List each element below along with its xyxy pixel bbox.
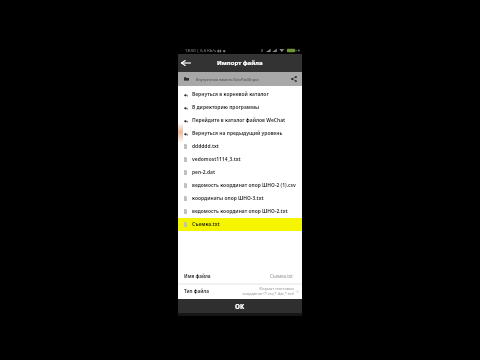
- staticText: vedomost1114_3.txt: [192, 156, 241, 163]
- button[interactable]: В директорию программы: [178, 101, 302, 114]
- button[interactable]: Back: [178, 55, 194, 71]
- button[interactable]: Перейдите в каталог файлов WeChat: [178, 114, 302, 127]
- staticText: Формат текстовых координат (*.csv,*.dat,…: [242, 286, 294, 296]
- staticText: 18:50 | 6.6 Kb/s: [185, 48, 216, 54]
- staticText: Съемка.txt: [270, 273, 293, 279]
- staticText: Имя файла: [184, 273, 211, 279]
- button[interactable]: Вернуться в корневой каталог: [178, 88, 302, 101]
- button[interactable]: Съемка.txt: [178, 218, 302, 231]
- staticText: Вернуться в корневой каталог: [192, 91, 269, 98]
- staticText: Вернуться на предыдущий уровень: [192, 130, 283, 137]
- staticText: Перейдите в каталог файлов WeChat: [192, 117, 286, 124]
- button[interactable]: OK: [178, 299, 302, 313]
- button[interactable]: Тип файла: [184, 285, 299, 297]
- staticText: Внутренняя память/GeoPad/Input: [196, 77, 288, 82]
- staticText: ведомость координат опор ШНО-2.txt: [192, 208, 288, 215]
- staticText: Импорт файла: [217, 59, 263, 67]
- button[interactable]: координаты опор ШНО-3.txt: [178, 192, 302, 205]
- staticText: OK: [235, 302, 245, 310]
- staticText: pen-2.dat: [192, 169, 216, 176]
- button[interactable]: Имя файла: [184, 268, 293, 283]
- button[interactable]: vedomost1114_3.txt: [178, 153, 302, 166]
- button[interactable]: ведомость координат опор ШНО-2 (1).csv: [178, 179, 302, 192]
- staticText: координаты опор ШНО-3.txt: [192, 195, 264, 202]
- button[interactable]: pen-2.dat: [178, 166, 302, 179]
- button[interactable]: ведомость координат опор ШНО-2.txt: [178, 205, 302, 218]
- staticText: dddddd.txt: [192, 143, 219, 150]
- button[interactable]: Share: [288, 73, 300, 85]
- staticText: В директорию программы: [192, 104, 260, 111]
- button[interactable]: Вернуться на предыдущий уровень: [178, 127, 302, 140]
- button[interactable]: Внутренняя память/GeoPad/Input: [178, 72, 302, 86]
- button[interactable]: dddddd.txt: [178, 140, 302, 153]
- staticText: ведомость координат опор ШНО-2 (1).csv: [192, 182, 296, 189]
- staticText: Тип файла: [184, 288, 209, 294]
- staticText: Съемка.txt: [192, 221, 220, 228]
